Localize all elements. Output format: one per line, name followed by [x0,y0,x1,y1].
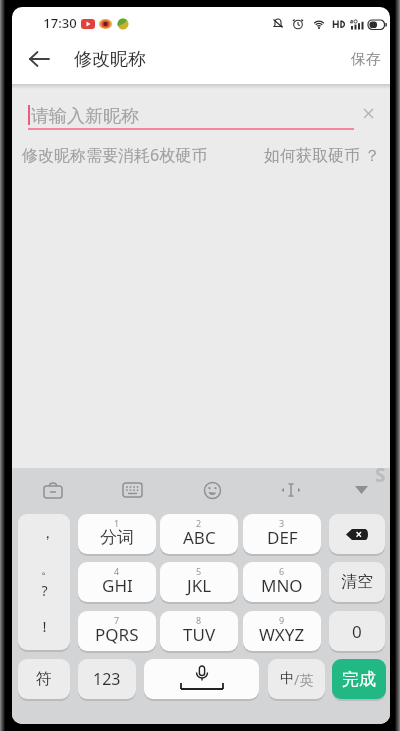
button[interactable]: 1 [78,514,156,554]
button[interactable] [277,477,305,503]
staticText: ， [40,524,55,543]
staticText: 清空 [341,572,373,592]
button[interactable]: 完成 [332,659,386,699]
staticText: ! [42,616,47,636]
button[interactable]: 清空 [329,562,385,602]
staticText: /英 [294,670,314,689]
button[interactable]: ， [18,514,70,650]
button[interactable]: 9 [243,611,321,651]
staticText: 如何获取硬币 ？ [264,144,381,164]
button[interactable]: 8 [160,611,238,651]
button[interactable] [358,103,378,123]
button[interactable]: 123 [78,659,136,699]
button[interactable] [118,477,146,503]
button[interactable]: 2 [160,514,238,554]
button[interactable] [329,514,385,554]
staticText: ? [41,581,48,600]
button[interactable]: 3 [243,514,321,554]
button[interactable]: 如何获取硬币 ？ [252,144,390,164]
staticText: 请输入新昵称 [31,105,139,127]
staticText: 4 [114,565,120,577]
staticText: 9 [279,614,285,626]
staticText: 8 [196,614,202,626]
staticText: 0 [352,620,362,643]
staticText: 。 [41,561,54,577]
staticText: 保存 [351,50,381,69]
button[interactable] [26,45,56,73]
staticText: 分词 [100,527,134,548]
staticText: 5 [196,565,202,577]
staticText: TUV [183,623,216,646]
staticText: 完成 [342,669,376,690]
staticText: JKL [187,574,212,597]
button[interactable]: 6 [243,562,321,602]
staticText: ABC [183,526,216,549]
staticText: GHI [102,574,133,597]
staticText: PQRS [95,623,139,646]
button[interactable]: 保存 [346,45,386,73]
staticText: MNO [261,574,303,597]
button[interactable] [347,477,375,503]
staticText: 17:30 [43,14,77,32]
button[interactable]: 4 [78,562,156,602]
staticText: 1 [114,517,120,529]
staticText: S [375,462,386,486]
staticText: 修改昵称 [74,48,146,71]
button[interactable] [144,659,259,699]
staticText: 6 [279,565,285,577]
staticText: 7 [114,614,120,626]
button[interactable] [198,477,226,503]
staticText: DEF [267,526,298,549]
button[interactable] [39,477,67,503]
staticText: 123 [93,668,121,690]
button[interactable]: 7 [78,611,156,651]
staticText: 中 [280,670,294,688]
staticText: 修改昵称需要消耗6枚硬币 [22,144,208,164]
staticText: 符 [36,669,52,689]
staticText: WXYZ [259,623,305,646]
button[interactable]: 符 [18,659,70,699]
button[interactable]: 5 [160,562,238,602]
staticText: 2 [196,517,202,529]
button[interactable]: 0 [329,611,385,651]
staticText: 3 [279,517,285,529]
button[interactable]: 中 [268,659,325,699]
